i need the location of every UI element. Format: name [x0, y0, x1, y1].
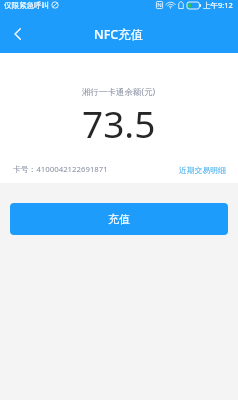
staticText: 73.5	[82, 98, 156, 148]
staticText: NFC充值	[94, 26, 144, 43]
button[interactable]: Back	[0, 14, 34, 53]
staticText: 充值	[108, 212, 130, 226]
staticText: 卡号：4100042122691871	[13, 164, 108, 175]
staticText: 上午9:12	[203, 0, 233, 10]
staticText: 仅限紧急呼叫	[4, 1, 49, 10]
button[interactable]: 充值	[10, 203, 228, 235]
staticText: 近期交易明细	[179, 165, 226, 175]
button[interactable]: 近期交易明细	[179, 165, 226, 175]
staticText: 湘行一卡通余额(元)	[82, 86, 156, 98]
